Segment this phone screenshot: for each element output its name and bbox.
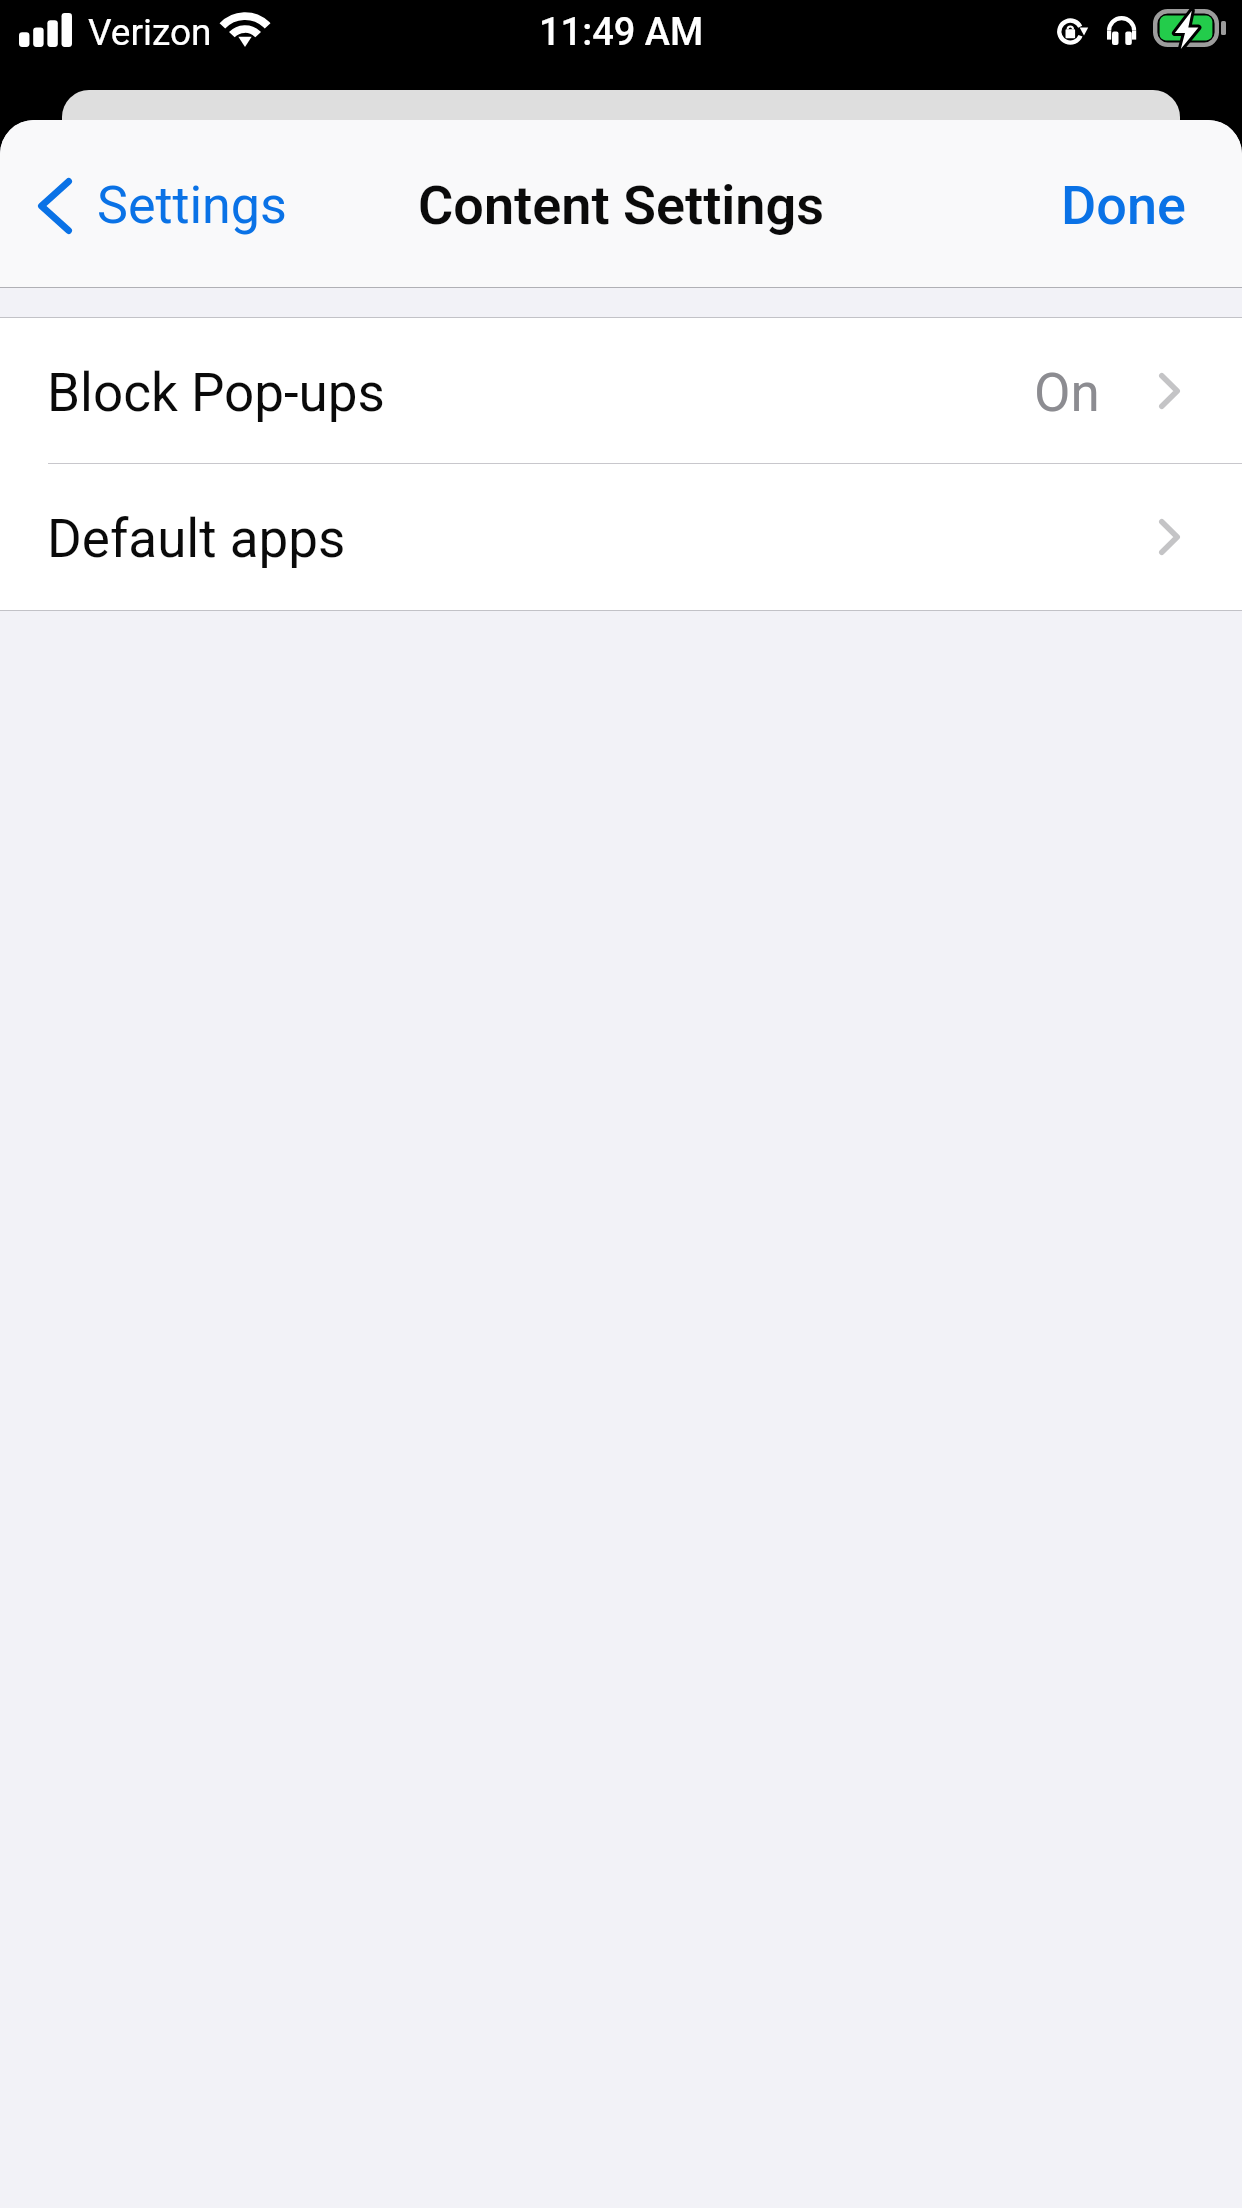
other: Open: [1159, 373, 1180, 409]
staticText: On: [1034, 362, 1100, 424]
button[interactable]: Done: [1047, 157, 1200, 252]
staticText: Settings: [97, 175, 287, 236]
other: Cellular signal: [19, 13, 72, 47]
other: Rotation lock: [1056, 14, 1090, 48]
staticText: Default apps: [47, 508, 346, 570]
staticText: Block Pop-ups: [47, 362, 385, 424]
other: Back: [38, 178, 72, 234]
button[interactable]: Block Pop-ups: [0, 318, 1242, 464]
staticText: Verizon: [88, 11, 212, 54]
button[interactable]: Default apps: [0, 464, 1242, 610]
button[interactable]: Back: [22, 160, 297, 249]
staticText: 11:49 AM: [539, 10, 704, 55]
staticText: Content Settings: [418, 174, 824, 237]
staticText: Done: [1061, 174, 1186, 237]
other: Battery charging: [1151, 7, 1227, 49]
other: Headphones connected: [1107, 16, 1137, 46]
other: Open: [1159, 519, 1180, 555]
